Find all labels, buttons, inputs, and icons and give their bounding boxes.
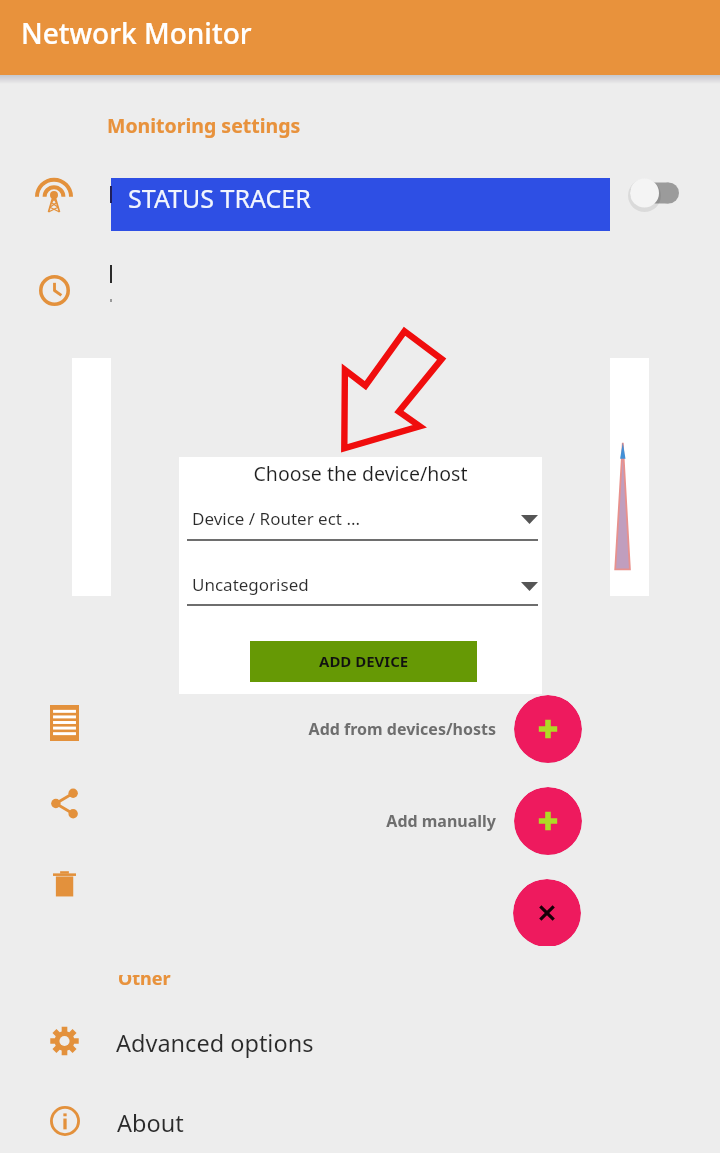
button[interactable]: List [42,696,88,742]
staticText: Add manually [250,810,496,832]
staticText: Monitoring settings [107,112,301,139]
staticText: Choose the device/host [179,460,542,487]
button[interactable]: Delete [42,862,88,908]
button[interactable]: Toggle status tracer [622,170,686,216]
button[interactable]: ADD DEVICE [250,641,477,682]
staticText: Uncategorised [192,573,309,596]
staticText: ADD DEVICE [319,651,409,671]
staticText: Network Monitor [21,14,252,52]
button[interactable]: Add from devices or hosts [514,695,582,763]
button[interactable]: About [0,1084,720,1153]
staticText: Advanced options [116,1027,314,1059]
button[interactable]: Share [42,780,88,826]
staticText: STATUS TRACER [128,181,311,215]
button[interactable]: STATUS TRACER [111,178,610,231]
staticText: Device / Router ect ... [192,507,361,530]
staticText: About [117,1107,184,1139]
button[interactable]: Close [513,879,581,947]
staticText: Add from devices/hosts [250,718,496,740]
button[interactable]: Advanced options [0,1004,720,1080]
staticText: Other [118,966,171,991]
button[interactable]: Add manually [514,787,582,855]
